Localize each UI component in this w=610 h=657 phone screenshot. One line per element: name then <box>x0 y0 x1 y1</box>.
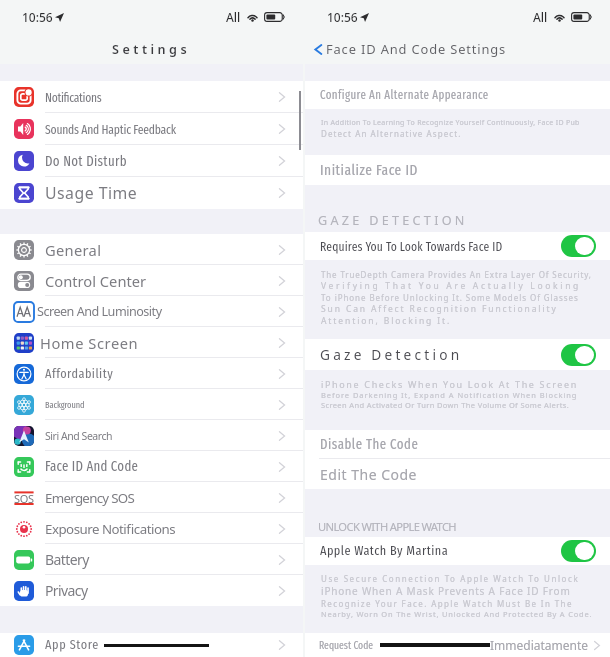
button[interactable]: Sounds And Haptic Feedback <box>0 113 303 145</box>
staticText: Do Not Disturb <box>45 153 127 170</box>
staticText: Battery <box>45 550 89 569</box>
staticText: Screen And Activated Or Turn Down The Vo… <box>321 400 570 410</box>
staticText: Requires You To Look Towards Face ID <box>320 239 503 254</box>
staticText: Screen And Luminosity <box>37 303 162 320</box>
button[interactable]: Do Not Disturb <box>0 145 303 177</box>
staticText: Configure An Alternate Appearance <box>320 88 489 102</box>
button[interactable]: App Store <box>0 633 303 657</box>
staticText: GAZE DETECTION <box>318 212 468 229</box>
staticText: Sounds And Haptic Feedback <box>45 122 177 137</box>
button[interactable]: Screen And Luminosity <box>0 296 303 327</box>
button[interactable]: Usage Time <box>0 177 303 209</box>
staticText: iPhone When A Mask Prevents A Face ID Fr… <box>321 584 571 598</box>
staticText: Siri And Search <box>45 429 113 443</box>
staticText: iPhone Checks When You Look At The Scree… <box>321 378 578 390</box>
button[interactable]: Face ID And Code <box>0 451 303 482</box>
button[interactable]: Requires You To Look Towards Face ID <box>305 232 610 260</box>
button[interactable]: Privacy <box>0 575 303 606</box>
staticText: Notifications <box>45 90 102 105</box>
staticText: Face ID And Code Settings <box>326 40 507 58</box>
staticText: All <box>533 9 548 25</box>
button[interactable]: Initialize Face ID <box>305 155 610 185</box>
staticText: The TrueDepth Camera Provides An Extra L… <box>321 269 592 280</box>
staticText: Settings <box>112 41 191 58</box>
button[interactable]: Background <box>0 389 303 420</box>
button[interactable]: Toggle <box>561 235 596 257</box>
button[interactable]: General <box>0 234 303 265</box>
staticText: Usage Time <box>45 182 138 204</box>
staticText: All <box>226 9 241 25</box>
staticText: Home Screen <box>40 333 139 353</box>
staticText: SOS <box>14 491 34 506</box>
staticText: Exposure Notifications <box>45 520 176 538</box>
button[interactable]: Gaze Detection <box>305 339 610 370</box>
staticText: Affordability <box>45 366 114 382</box>
staticText: 10:56 <box>22 9 53 25</box>
staticText: 10:56 <box>327 9 358 25</box>
button[interactable]: Toggle <box>561 344 596 366</box>
button[interactable]: SOS <box>0 482 303 513</box>
staticText: App Store <box>45 637 99 653</box>
button[interactable]: Apple Watch By Martina <box>305 537 610 565</box>
button[interactable]: Disable The Code <box>305 430 610 459</box>
staticText: Request Code <box>319 639 374 652</box>
staticText: Immediatamente <box>490 637 589 653</box>
button[interactable]: Control Center <box>0 265 303 296</box>
button[interactable]: Toggle <box>561 540 596 562</box>
staticText: Recognize Your Face. Apple Watch Must Be… <box>321 598 573 609</box>
staticText: Privacy <box>45 581 88 600</box>
staticText: Sun Can Affect Recognition Functionality <box>321 303 558 315</box>
staticText: Control Center <box>45 271 147 291</box>
staticText: Detect An Alternative Aspect. <box>321 128 462 139</box>
staticText: Nearby, Worn On The Wrist, Unlocked And … <box>321 609 593 619</box>
button[interactable]: Edit The Code <box>305 459 610 489</box>
button[interactable]: Configure An Alternate Appearance <box>305 81 610 109</box>
staticText: To iPhone Before Unlocking It. Some Mode… <box>321 292 579 303</box>
staticText: Background <box>45 399 85 410</box>
staticText: Verifying That You Are Actually Looking <box>321 280 581 292</box>
button[interactable]: Battery <box>0 544 303 575</box>
button[interactable]: Home Screen <box>0 327 303 358</box>
staticText: Attention, Blocking It. <box>321 315 452 327</box>
staticText: Gaze Detection <box>320 345 463 364</box>
staticText: Before Darkening It, Expand A Notificati… <box>321 390 578 400</box>
staticText: Use Secure Connection To Apple Watch To … <box>321 573 580 584</box>
staticText: Initialize Face ID <box>320 161 418 179</box>
staticText: Emergency SOS <box>45 489 135 507</box>
button[interactable]: Request Code <box>305 633 610 657</box>
staticText: Edit The Code <box>320 465 417 484</box>
staticText: In Addition To Learning To Recognize You… <box>321 118 580 128</box>
staticText: Face ID And Code <box>45 458 139 475</box>
button[interactable]: Notifications <box>0 81 303 113</box>
staticText: Apple Watch By Martina <box>320 543 449 559</box>
staticText: General <box>45 240 102 260</box>
button[interactable]: Siri And Search <box>0 420 303 451</box>
button[interactable]: Back <box>312 40 507 58</box>
button[interactable]: Exposure Notifications <box>0 513 303 544</box>
staticText: UNLOCK WITH APPLE WATCH <box>318 519 456 534</box>
staticText: Disable The Code <box>320 436 419 453</box>
button[interactable]: Affordability <box>0 358 303 389</box>
